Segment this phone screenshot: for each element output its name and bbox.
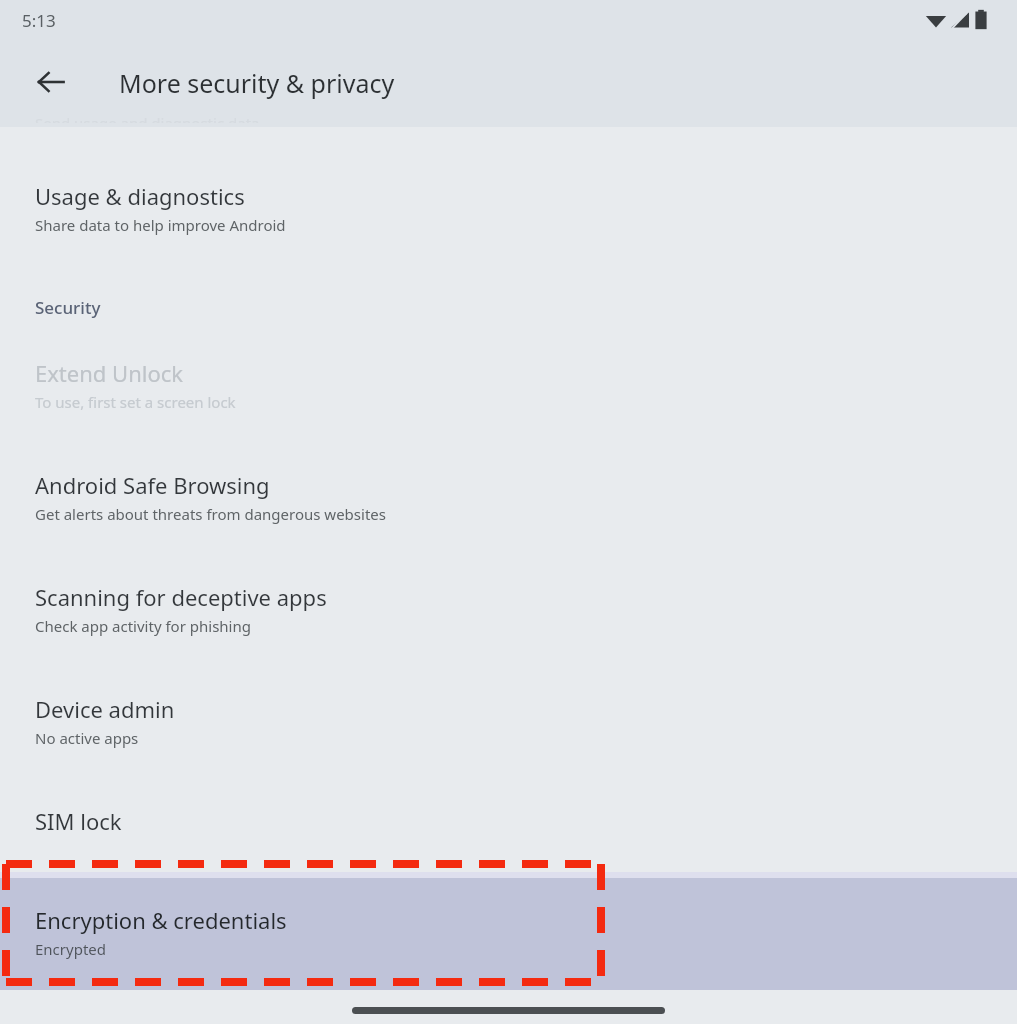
button[interactable]: Device admin	[0, 687, 1017, 799]
staticText: Device admin	[35, 694, 175, 724]
staticText: Encrypted	[35, 939, 106, 959]
staticText: 5:13	[22, 9, 56, 32]
staticText: SIM lock	[35, 806, 122, 836]
staticText: Check app activity for phishing	[35, 616, 251, 636]
staticText: Android Safe Browsing	[35, 470, 270, 500]
staticText: To use, first set a screen lock	[35, 392, 236, 412]
staticText: Usage & diagnostics	[35, 181, 245, 211]
button[interactable]: Scanning for deceptive apps	[0, 575, 1017, 687]
staticText: Get alerts about threats from dangerous …	[35, 504, 386, 524]
button[interactable]: Android Safe Browsing	[0, 463, 1017, 575]
staticText: More security & privacy	[119, 66, 395, 100]
staticText: Extend Unlock	[35, 358, 184, 388]
button[interactable]: Encryption & credentials	[0, 878, 1017, 990]
button[interactable]: Usage & diagnostics	[0, 137, 1017, 289]
staticText: Share data to help improve Android	[35, 215, 286, 235]
button[interactable]: Back	[26, 57, 76, 107]
staticText: Scanning for deceptive apps	[35, 582, 327, 612]
staticText: Encryption & credentials	[35, 905, 287, 935]
button[interactable]: Extend Unlock	[0, 351, 1017, 463]
staticText: Security	[35, 296, 101, 319]
button[interactable]: SIM lock	[0, 799, 1017, 872]
staticText: No active apps	[35, 728, 139, 748]
